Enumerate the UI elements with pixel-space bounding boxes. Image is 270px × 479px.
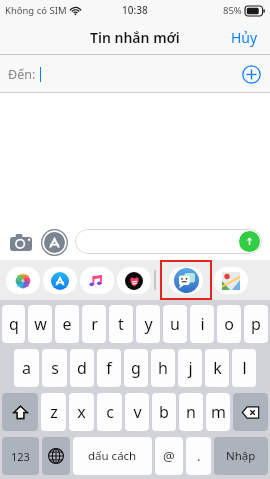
button[interactable]: l — [232, 349, 256, 387]
staticText: y — [144, 313, 153, 335]
staticText: i — [200, 313, 205, 335]
staticText: @ — [163, 447, 175, 465]
staticText: Nhập — [226, 448, 256, 464]
button[interactable]: e — [55, 305, 79, 343]
button[interactable]: Camera — [8, 229, 34, 255]
button[interactable]: n — [179, 393, 203, 431]
staticText: Tin nhắn mới — [90, 28, 180, 47]
button[interactable]: h — [151, 349, 175, 387]
staticText: w — [34, 313, 47, 335]
staticText: 10:38 — [122, 3, 148, 17]
button[interactable]: Photos — [6, 267, 40, 294]
staticText: m — [211, 401, 226, 423]
staticText: s — [51, 357, 59, 379]
button[interactable]: @ — [155, 437, 183, 475]
staticText: Không có SIM — [5, 4, 67, 17]
button[interactable]: q — [2, 305, 25, 343]
staticText: h — [158, 357, 168, 379]
staticText: 85% — [223, 4, 242, 17]
button[interactable]: App Store — [43, 267, 77, 294]
button[interactable]: o — [217, 305, 241, 343]
staticText: n — [186, 401, 196, 423]
button[interactable]: Stickers — [160, 260, 212, 300]
staticText: x — [77, 401, 86, 423]
button[interactable]: y — [136, 305, 160, 343]
staticText: p — [251, 313, 261, 335]
staticText: g — [131, 357, 141, 379]
staticText: t — [118, 313, 124, 335]
staticText: c — [106, 401, 114, 423]
button[interactable]: . — [186, 437, 211, 475]
button[interactable]: u — [163, 305, 187, 343]
button[interactable]: z — [41, 393, 66, 431]
staticText: q — [9, 313, 19, 335]
button[interactable]: Backspace — [233, 393, 268, 431]
button[interactable]: Hủy — [219, 22, 270, 53]
button[interactable]: Digital Touch — [117, 267, 151, 294]
staticText: a — [22, 357, 31, 379]
staticText: Hủy — [231, 28, 258, 47]
button[interactable]: Send — [239, 231, 260, 252]
staticText: e — [62, 313, 72, 335]
button[interactable]: i — [190, 305, 214, 343]
button[interactable]: v — [125, 393, 149, 431]
button[interactable]: w — [28, 305, 52, 343]
button[interactable]: Shift — [2, 393, 38, 431]
button[interactable]: Maps — [214, 267, 248, 294]
staticText: z — [50, 401, 58, 423]
button[interactable]: Music — [80, 267, 114, 294]
button[interactable]: x — [69, 393, 94, 431]
staticText: b — [159, 401, 169, 423]
button[interactable]: c — [97, 393, 122, 431]
button[interactable]: p — [244, 305, 268, 343]
staticText: j — [188, 357, 193, 379]
staticText: f — [106, 357, 112, 379]
button[interactable]: Add contact — [242, 65, 261, 84]
button[interactable]: dấu cách — [73, 437, 152, 475]
button[interactable]: j — [178, 349, 202, 387]
staticText: . — [197, 447, 201, 465]
button[interactable]: k — [205, 349, 229, 387]
button[interactable]: d — [70, 349, 94, 387]
staticText: v — [133, 401, 142, 423]
staticText: r — [91, 313, 98, 335]
button[interactable]: 123 — [2, 437, 39, 475]
button[interactable]: t — [109, 305, 133, 343]
staticText: u — [170, 313, 180, 335]
staticText: dấu cách — [88, 448, 137, 464]
button[interactable]: b — [152, 393, 176, 431]
staticText: d — [77, 357, 87, 379]
staticText: l — [242, 357, 247, 379]
button[interactable]: r — [82, 305, 106, 343]
button[interactable]: g — [124, 349, 148, 387]
staticText: k — [213, 357, 222, 379]
button[interactable]: s — [42, 349, 67, 387]
button[interactable]: m — [206, 393, 230, 431]
button[interactable]: App Store — [41, 229, 67, 255]
button[interactable]: f — [97, 349, 121, 387]
staticText: Đến: — [8, 66, 36, 83]
staticText: o — [224, 313, 234, 335]
button[interactable]: Send — [75, 229, 262, 254]
button[interactable]: Nhập — [214, 437, 268, 475]
staticText: 123 — [11, 449, 30, 464]
button[interactable]: Change keyboard — [42, 437, 70, 475]
button[interactable]: a — [14, 349, 39, 387]
